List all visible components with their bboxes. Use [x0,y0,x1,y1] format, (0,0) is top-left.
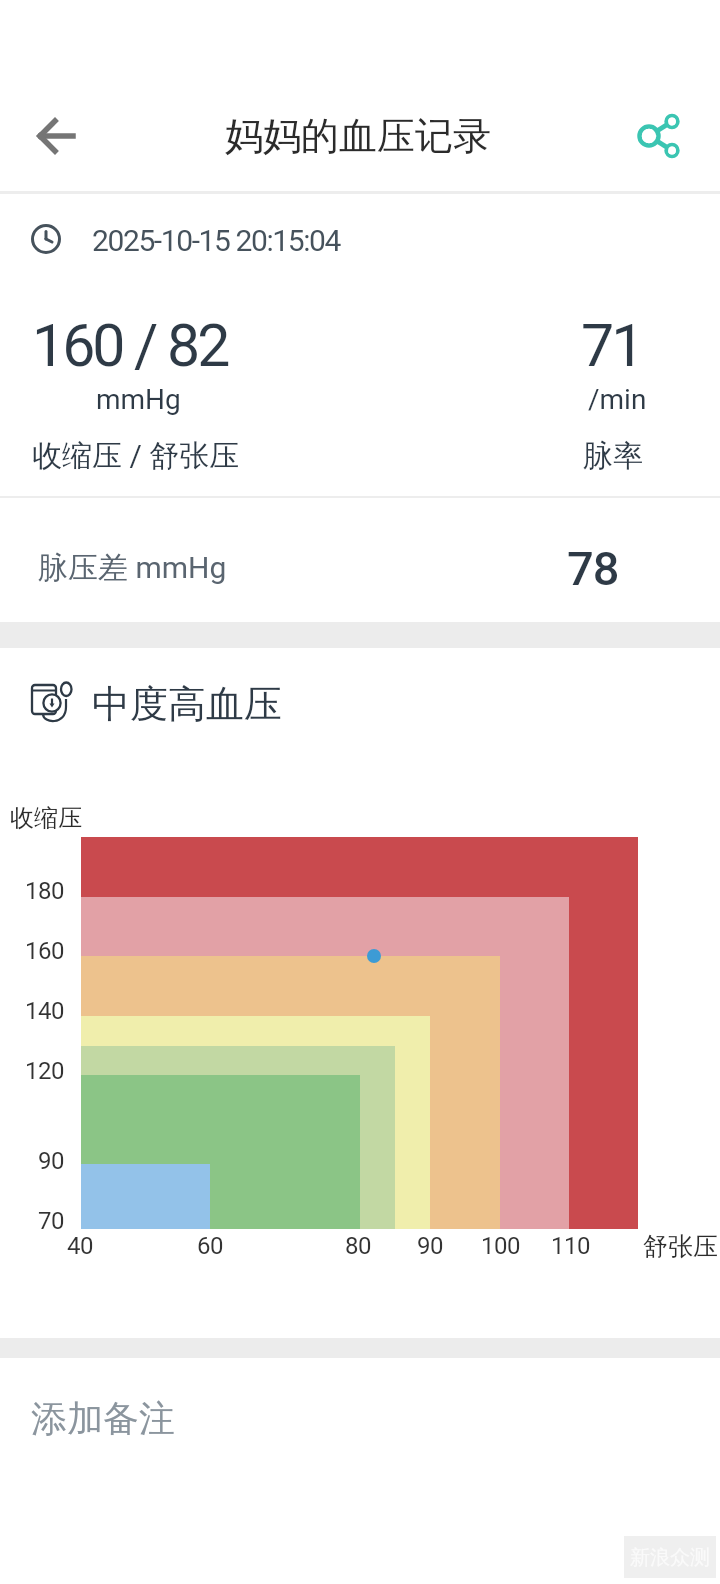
staticText: 90 [38,1147,64,1175]
staticText: 舒张压 [643,1231,718,1262]
staticText: 妈妈的血压记录 [225,112,491,160]
staticText: 60 [197,1232,223,1260]
staticText: 70 [38,1207,64,1235]
staticText: 100 [481,1232,520,1260]
staticText: 110 [551,1232,590,1260]
staticText: 新浪众测 [630,1545,710,1570]
staticText: /min [588,383,647,416]
staticText: 160 [25,937,64,965]
staticText: 78 [567,541,619,596]
staticText: 脉压差 mmHg [38,549,227,587]
staticText: 80 [345,1232,371,1260]
staticText: 脉率 [583,437,643,475]
staticText: 收缩压 / 舒张压 [32,437,240,475]
staticText: 120 [25,1057,64,1085]
staticText: 收缩压 [10,803,82,833]
button[interactable]: 添加备注 [0,1380,720,1456]
staticText: mmHg [96,383,181,416]
staticText: 40 [67,1232,93,1260]
staticText: 71 [581,311,642,380]
staticText: 中度高血压 [92,680,282,728]
staticText: 180 [25,877,64,905]
staticText: 140 [25,997,64,1025]
staticText: 添加备注 [31,1396,175,1441]
staticText: 160 / 82 [32,311,228,380]
staticText: 2025-10-15 20:15:04 [92,223,340,258]
button[interactable] [30,110,82,162]
staticText: 90 [417,1232,443,1260]
button[interactable] [632,108,688,164]
